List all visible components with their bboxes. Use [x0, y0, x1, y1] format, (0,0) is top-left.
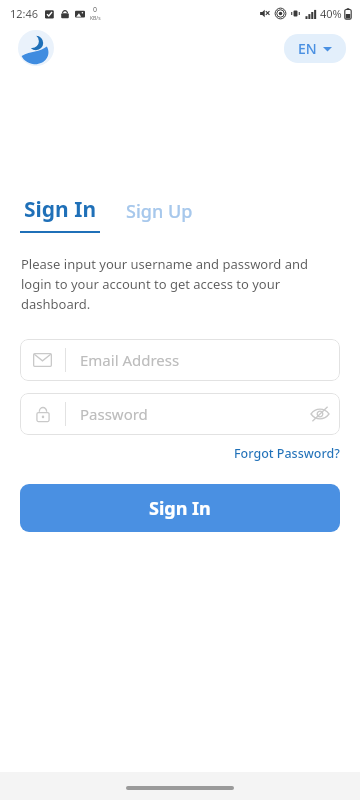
staticText: EN: [298, 39, 317, 58]
button[interactable]: Show password: [300, 394, 340, 434]
staticText: Sign In: [24, 195, 97, 224]
staticText: 0: [93, 5, 98, 15]
button[interactable]: Sign In: [20, 484, 340, 532]
staticText: 12:46: [10, 6, 39, 21]
button[interactable]: Password: [20, 393, 340, 435]
staticText: KB/s: [90, 15, 101, 22]
button[interactable]: EN: [284, 34, 346, 63]
staticText: Sign Up: [126, 199, 193, 224]
button[interactable]: Sign In: [20, 195, 100, 233]
button[interactable]: Forgot Password?: [234, 443, 360, 464]
staticText: Forgot Password?: [234, 445, 340, 462]
staticText: 40%: [320, 6, 342, 21]
button[interactable]: Sign Up: [126, 199, 193, 233]
button[interactable]: Email Address: [20, 339, 340, 381]
staticText: Please input your username and password …: [21, 255, 334, 313]
staticText: Password: [80, 404, 148, 424]
staticText: Email Address: [80, 350, 180, 370]
button[interactable]: Dark mode: [18, 30, 54, 66]
staticText: Sign In: [149, 496, 211, 521]
